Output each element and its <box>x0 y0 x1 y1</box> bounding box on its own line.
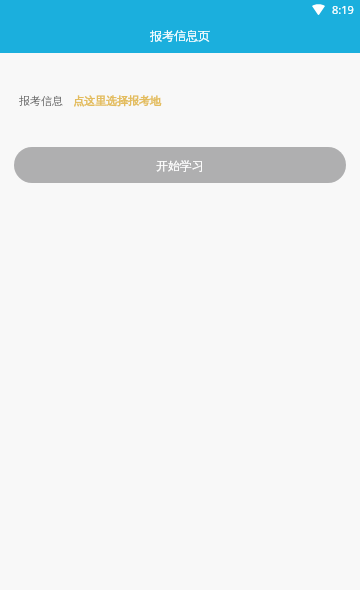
staticText: 点这里选择报考地 <box>73 94 161 108</box>
staticText: 8:19 <box>332 2 354 17</box>
button[interactable]: 开始学习 <box>14 147 346 183</box>
other: Wi-Fi <box>312 4 325 15</box>
staticText: 报考信息页 <box>150 28 210 43</box>
staticText: 开始学习 <box>156 158 204 173</box>
staticText: 报考信息 <box>19 94 63 108</box>
button[interactable]: 点这里选择报考地 <box>73 94 161 108</box>
